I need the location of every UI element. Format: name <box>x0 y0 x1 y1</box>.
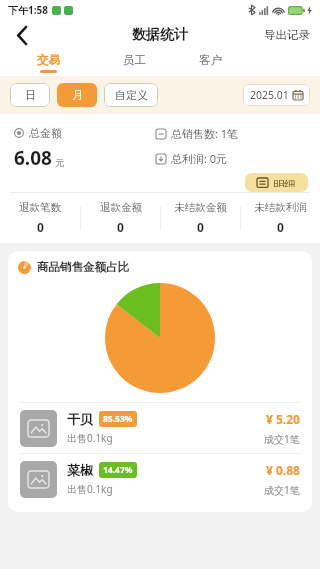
button[interactable]: 菜椒 <box>8 454 312 504</box>
staticText: 0 <box>37 219 44 235</box>
staticText: 导出记录 <box>264 28 310 42</box>
staticText: 0 <box>277 219 284 235</box>
staticText: ¥ 5.20 <box>266 411 300 427</box>
staticText: 85.53% <box>103 413 133 425</box>
staticText: 总利润: 0元 <box>171 151 228 166</box>
button[interactable]: 交易 <box>0 50 96 76</box>
staticText: 干贝 <box>67 411 93 427</box>
staticText: 明细 <box>273 178 296 187</box>
staticText: 未结款金额 <box>174 201 227 214</box>
staticText: 14.47% <box>103 464 133 476</box>
staticText: 退款金额 <box>100 201 142 214</box>
staticText: 月 <box>72 88 83 102</box>
staticText: 0 <box>117 219 124 235</box>
staticText: 退款笔数 <box>19 201 61 214</box>
staticText: 出售0.1kg <box>67 482 113 496</box>
button[interactable]: 日 <box>10 83 50 107</box>
button[interactable]: 干贝 <box>8 403 312 453</box>
staticText: 交易 <box>37 53 60 67</box>
staticText: 菜椒 <box>67 462 93 478</box>
button[interactable]: 自定义 <box>104 83 158 107</box>
button[interactable]: 2025.01 <box>243 84 310 106</box>
button[interactable]: 客户 <box>172 50 248 76</box>
button[interactable]: 导出记录 <box>264 28 310 42</box>
staticText: 数据统计 <box>132 26 188 44</box>
staticText: 客户 <box>199 53 222 67</box>
button[interactable]: 月 <box>57 83 97 107</box>
button[interactable]: Back <box>8 21 36 49</box>
staticText: 成交1笔 <box>264 432 300 446</box>
staticText: 成交1笔 <box>264 483 300 497</box>
staticText: 总销售数: 1笔 <box>171 126 239 141</box>
staticText: 员工 <box>123 53 146 67</box>
staticText: 6.08 <box>14 145 52 171</box>
staticText: 总金额 <box>29 126 62 140</box>
staticText: 元 <box>55 157 65 169</box>
button[interactable]: 明细 <box>245 173 308 192</box>
staticText: 自定义 <box>115 88 148 102</box>
staticText: 下午1:58 <box>8 3 48 17</box>
staticText: 商品销售金额占比 <box>37 260 129 274</box>
staticText: 出售0.1kg <box>67 431 113 445</box>
staticText: 2025.01 <box>250 88 289 102</box>
button[interactable]: 员工 <box>96 50 172 76</box>
staticText: ¥ 0.88 <box>266 462 300 478</box>
staticText: 0 <box>197 219 204 235</box>
staticText: 日 <box>25 88 36 102</box>
staticText: 未结款利润 <box>254 201 307 214</box>
